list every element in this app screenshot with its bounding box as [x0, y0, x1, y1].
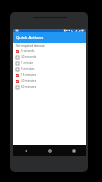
staticText: 15 minutes [21, 73, 37, 77]
button[interactable]: 5 minutes [13, 66, 86, 72]
button[interactable]: Quick Actions [13, 32, 86, 43]
staticText: 30 minutes [21, 79, 37, 83]
button[interactable]: 30 seconds [13, 54, 86, 60]
button[interactable]: Back [13, 145, 38, 156]
staticText: Set required timeout [16, 44, 45, 48]
button[interactable]: 30 minutes [13, 78, 86, 84]
button[interactable]: Recents [62, 145, 86, 156]
button[interactable]: 60 minutes [13, 84, 86, 90]
staticText: 30 seconds [21, 55, 37, 59]
staticText: 5 minutes [21, 67, 35, 71]
staticText: 60 minutes [21, 85, 37, 89]
staticText: 5 seconds [21, 49, 35, 53]
button[interactable]: 1 minute [13, 60, 86, 66]
button[interactable]: Home [38, 145, 62, 156]
button[interactable]: 15 minutes [13, 72, 86, 78]
button[interactable]: 5 seconds [13, 48, 86, 54]
staticText: 1 minute [21, 61, 34, 65]
staticText: Quick Actions [16, 35, 44, 41]
